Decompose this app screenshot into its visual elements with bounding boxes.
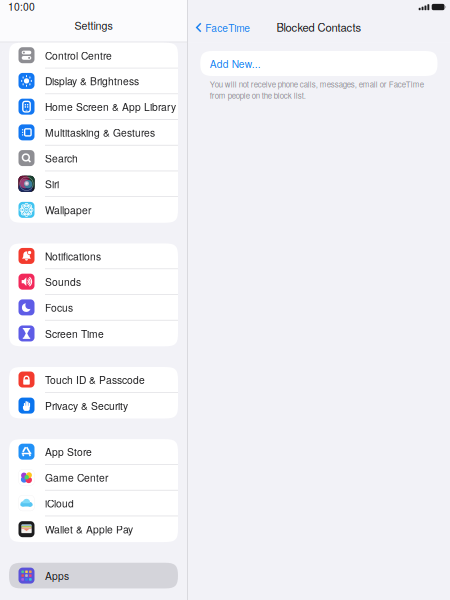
staticText: Game Center: [45, 470, 108, 485]
staticText: Siri: [45, 176, 59, 191]
button[interactable]: Sounds: [9, 269, 178, 295]
staticText: You will not receive phone calls, messag…: [210, 78, 424, 101]
staticText: Display & Brightness: [45, 74, 139, 88]
button[interactable]: Game Center: [9, 465, 178, 491]
button[interactable]: Siri: [9, 171, 178, 197]
staticText: Settings: [74, 17, 112, 33]
staticText: Focus: [45, 300, 73, 315]
button[interactable]: Multitasking & Gestures: [9, 120, 178, 146]
button[interactable]: Wallet & Apple Pay: [9, 516, 178, 542]
button[interactable]: Screen Time: [9, 321, 178, 346]
staticText: Wallet & Apple Pay: [45, 522, 133, 536]
button[interactable]: App Store: [9, 439, 178, 465]
button[interactable]: Display & Brightness: [9, 68, 178, 94]
staticText: 10:00: [8, 0, 35, 14]
staticText: Multitasking & Gestures: [45, 125, 155, 140]
staticText: iCloud: [45, 496, 74, 510]
button[interactable]: Apps: [9, 563, 178, 588]
button[interactable]: Notifications: [9, 243, 178, 269]
staticText: App Store: [45, 444, 92, 459]
staticText: Wallpaper: [45, 202, 91, 217]
staticText: Search: [45, 151, 78, 165]
button[interactable]: Privacy & Security: [9, 393, 178, 418]
button[interactable]: Touch ID & Passcode: [9, 367, 178, 393]
staticText: Screen Time: [45, 326, 104, 341]
staticText: Apps: [45, 568, 69, 583]
staticText: Sounds: [45, 274, 81, 289]
staticText: FaceTime: [205, 20, 250, 35]
button[interactable]: Wallpaper: [9, 197, 178, 223]
staticText: Home Screen & App Library: [45, 99, 176, 114]
staticText: Notifications: [45, 249, 101, 263]
staticText: Control Centre: [45, 48, 112, 63]
staticText: Add New...: [210, 56, 261, 71]
staticText: Blocked Contacts: [276, 19, 361, 35]
staticText: Privacy & Security: [45, 398, 128, 413]
staticText: Touch ID & Passcode: [45, 372, 145, 387]
button[interactable]: Focus: [9, 295, 178, 321]
button[interactable]: Home Screen & App Library: [9, 94, 178, 120]
button[interactable]: iCloud: [9, 491, 178, 516]
button[interactable]: Control Centre: [9, 43, 178, 68]
button[interactable]: Search: [9, 146, 178, 171]
button[interactable]: FaceTime: [188, 16, 254, 39]
button[interactable]: Add New...: [200, 51, 437, 76]
